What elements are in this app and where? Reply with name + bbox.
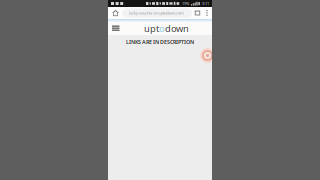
button[interactable]: More options [203,7,211,19]
button[interactable]: lucky-voucher-en.uptodown.com [122,8,192,17]
button[interactable]: Menu [108,20,123,36]
staticText: 3:11 [202,1,209,6]
button[interactable]: Home [109,7,122,19]
staticText: down [165,22,189,34]
staticText: upt [144,22,159,34]
staticText: o [159,22,165,34]
staticText: 19% [182,1,189,6]
staticText: lucky-voucher-en.uptodown.com [129,10,184,16]
button[interactable]: Tabs [192,7,203,19]
staticText: LINKS ARE IN DESCRIPTION [126,38,194,46]
